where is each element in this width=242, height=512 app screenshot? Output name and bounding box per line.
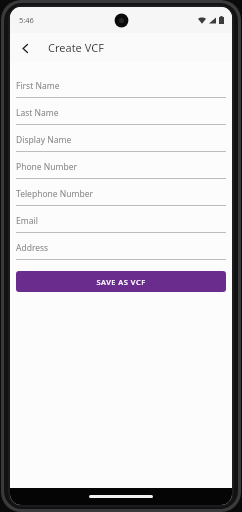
button[interactable]: Phone Number — [16, 156, 226, 183]
staticText: Last Name — [16, 107, 59, 119]
staticText: Email — [16, 215, 38, 227]
button[interactable]: Email — [16, 210, 226, 237]
staticText: Create VCF — [48, 40, 104, 55]
button[interactable]: Telephone Number — [16, 183, 226, 210]
staticText: 5:46 — [19, 15, 34, 25]
button[interactable]: Address — [16, 237, 226, 264]
staticText: Phone Number — [16, 161, 77, 173]
button[interactable]: Back — [14, 37, 36, 59]
staticText: Telephone Number — [16, 188, 93, 200]
button[interactable]: SAVE AS VCF — [16, 271, 226, 292]
button[interactable]: Display Name — [16, 129, 226, 156]
button[interactable]: First Name — [16, 75, 226, 102]
staticText: Display Name — [16, 134, 72, 146]
staticText: SAVE AS VCF — [96, 277, 146, 287]
staticText: Address — [16, 242, 49, 254]
staticText: First Name — [16, 80, 60, 92]
button[interactable]: Last Name — [16, 102, 226, 129]
